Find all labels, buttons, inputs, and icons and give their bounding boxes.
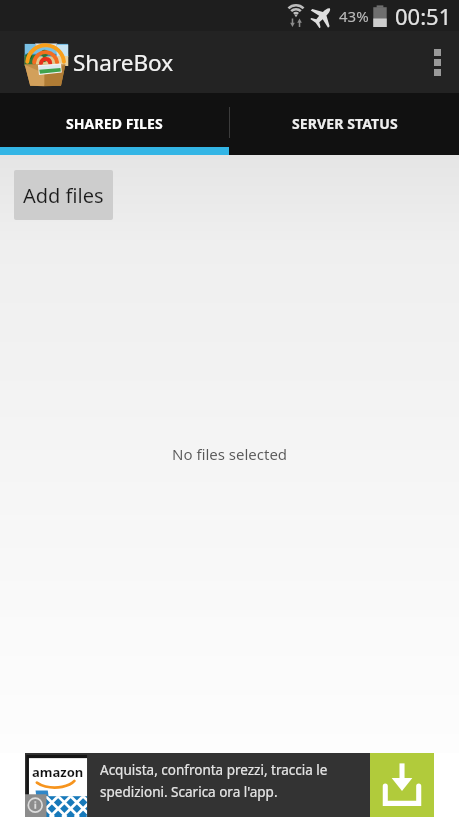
staticText: Acquista, confronta prezzi, traccia le — [100, 761, 328, 779]
button[interactable]: Amazon advertisement — [25, 753, 434, 817]
button[interactable]: Add files — [14, 170, 113, 220]
staticText: 43% — [339, 6, 369, 26]
staticText: spedizioni. Scarica ora l'app. — [100, 783, 278, 801]
staticText: No files selected — [172, 444, 288, 464]
button[interactable]: SERVER STATUS — [230, 93, 459, 147]
button[interactable]: More options — [415, 31, 459, 93]
staticText: SERVER STATUS — [292, 114, 398, 133]
staticText: amazon — [32, 763, 84, 781]
staticText: SHARED FILES — [66, 114, 163, 133]
button[interactable]: SHARED FILES — [0, 93, 229, 147]
staticText: ShareBox — [73, 47, 174, 78]
staticText: Add files — [23, 182, 104, 209]
staticText: 00:51 — [395, 1, 452, 31]
button[interactable]: Download app — [370, 753, 434, 817]
